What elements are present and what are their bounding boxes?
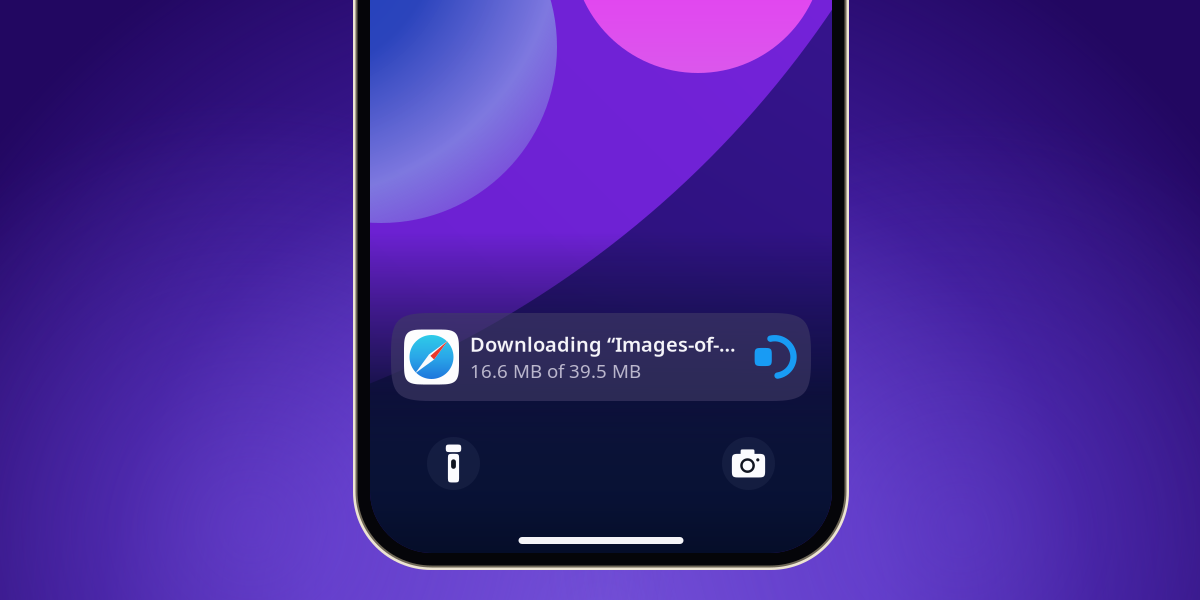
button[interactable]: Camera xyxy=(722,437,775,490)
button[interactable]: Flashlight xyxy=(427,437,480,490)
staticText: Downloading “Images-of-… xyxy=(470,331,736,357)
button[interactable]: Downloading “Images-of-… xyxy=(391,313,811,401)
staticText: 16.6 MB of 39.5 MB xyxy=(470,358,641,383)
